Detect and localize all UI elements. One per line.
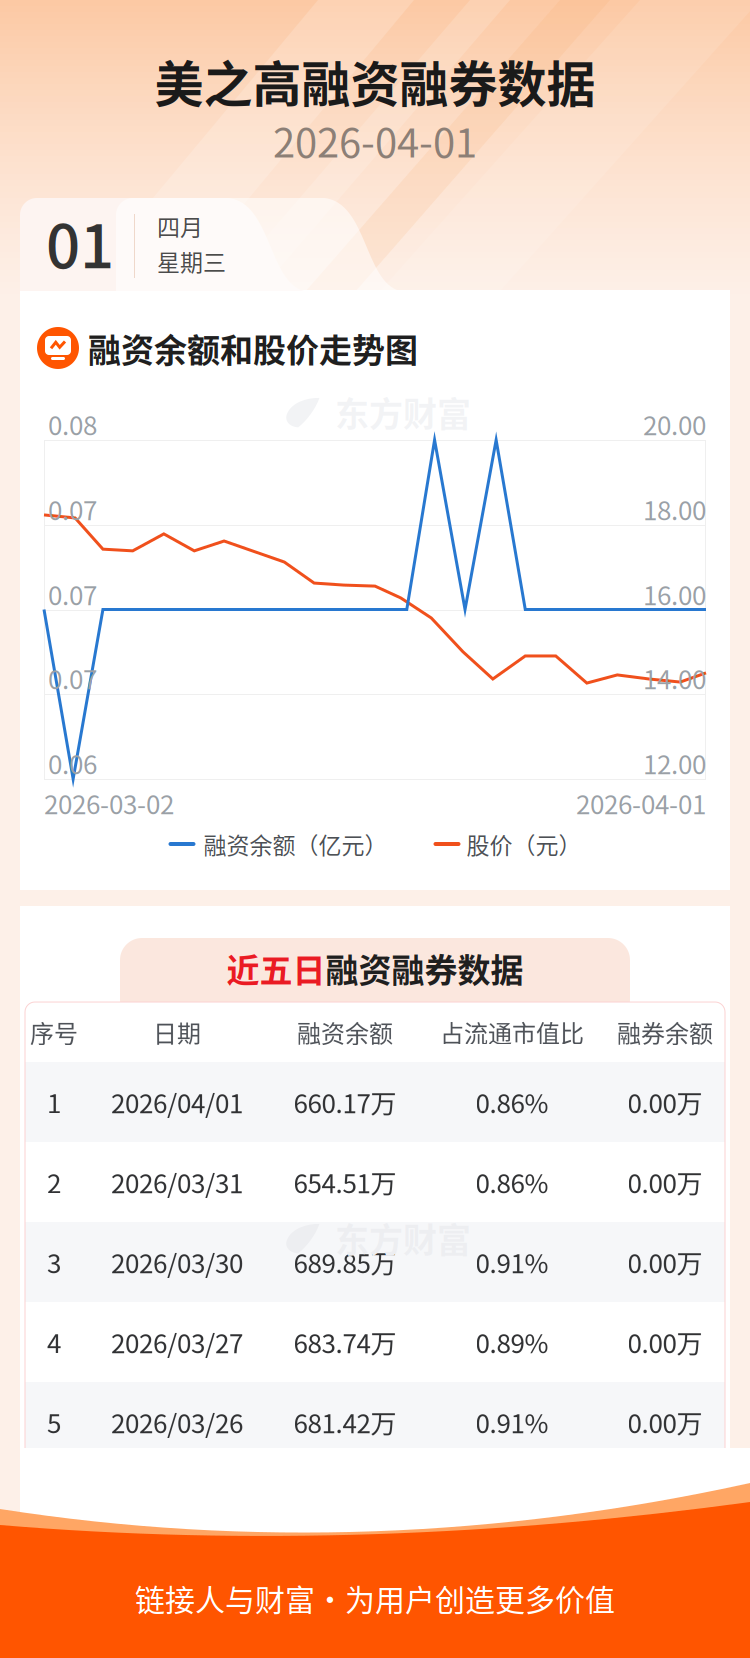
staticText: 2026-04-01 [273,111,477,169]
staticText: 16.00 [643,575,706,613]
staticText: 东方财富 [335,1213,471,1263]
staticText: 融资余额（亿元） [203,827,387,861]
staticText: 18.00 [643,490,706,528]
staticText: 681.42万 [293,1403,396,1441]
staticText: 0.00万 [627,1323,702,1361]
staticText: 0.86% [475,1163,548,1201]
staticText: 1 [47,1083,61,1121]
staticText: 四月 [157,209,203,243]
staticText: 0.07 [48,490,97,528]
staticText: 融资余额和股价走势图 [88,324,418,372]
staticText: 2 [47,1163,61,1201]
staticText: 美之高融资融券数据 [154,45,595,116]
staticText: 0.86% [475,1083,548,1121]
staticText: 2026/03/31 [111,1163,243,1201]
staticText: 12.00 [643,744,706,782]
staticText: 0.00万 [627,1163,702,1201]
staticText: 2026/03/30 [111,1243,243,1281]
staticText: 0.07 [48,659,97,697]
staticText: 东方财富 [335,387,471,437]
staticText: 2026/04/01 [111,1083,243,1121]
staticText: 01 [46,199,114,285]
staticText: 近五日 [226,944,325,992]
staticText: 0.00万 [627,1403,702,1441]
staticText: 星期三 [157,244,226,278]
staticText: 660.17万 [293,1083,396,1121]
staticText: 0.08 [48,405,97,443]
staticText: 序号 [30,1015,78,1049]
staticText: 2026/03/27 [111,1323,243,1361]
staticText: 链接人与财富·为用户创造更多价值 [135,1576,615,1620]
staticText: 日期 [153,1015,201,1049]
staticText: 5 [47,1403,61,1441]
staticText: 股价（元） [466,827,581,861]
staticText: 2026/03/26 [111,1403,243,1441]
staticText: 654.51万 [293,1163,396,1201]
staticText: 683.74万 [293,1323,396,1361]
staticText: 3 [47,1243,61,1281]
staticText: 2026-04-01 [576,784,706,822]
staticText: 0.06 [48,744,97,782]
staticText: 0.07 [48,575,97,613]
staticText: 0.00万 [627,1083,702,1121]
staticText: 融券余额 [617,1015,713,1049]
staticText: 占流通市值比 [440,1015,584,1049]
staticText: 14.00 [643,659,706,697]
staticText: 融资余额 [297,1015,393,1049]
staticText: 0.91% [475,1403,548,1441]
staticText: 2026-03-02 [44,784,174,822]
staticText: 0.89% [475,1323,548,1361]
staticText: 0.91% [475,1243,548,1281]
staticText: 融资融券数据 [325,944,523,992]
staticText: 689.85万 [293,1243,396,1281]
staticText: 0.00万 [627,1243,702,1281]
staticText: 4 [47,1323,61,1361]
staticText: 20.00 [643,405,706,443]
